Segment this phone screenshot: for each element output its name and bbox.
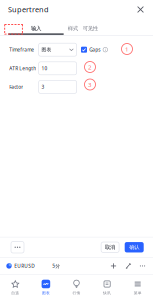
button[interactable]: Menu: [122, 275, 153, 300]
button[interactable]: Watchlist: [0, 275, 31, 300]
button[interactable]: 图表: [39, 43, 77, 56]
button[interactable]: News: [92, 275, 122, 300]
button[interactable]: 可见性: [83, 25, 98, 35]
button[interactable]: 取消: [101, 242, 119, 252]
button[interactable]: 3: [39, 80, 77, 93]
staticText: 2: [88, 63, 92, 71]
button[interactable]: 样式: [68, 25, 78, 35]
staticText: Factor: [9, 84, 23, 90]
staticText: EURUSD: [14, 263, 35, 269]
button[interactable]: Close: [134, 3, 147, 16]
staticText: Supertrend: [8, 4, 49, 14]
staticText: 图表: [42, 291, 50, 295]
button[interactable]: 输入: [8, 25, 64, 35]
staticText: 5分: [52, 263, 60, 269]
button[interactable]: 确认: [125, 242, 144, 252]
button[interactable]: Markets: [61, 275, 92, 300]
staticText: 输入: [31, 25, 41, 32]
button[interactable]: Drawing tools: [125, 262, 132, 269]
staticText: 10: [42, 65, 48, 71]
staticText: 确认: [129, 244, 139, 251]
button[interactable]: Chart: [31, 275, 61, 300]
button[interactable]: More options: [11, 241, 24, 253]
button[interactable]: Gaps: [81, 46, 108, 53]
staticText: Gaps: [89, 46, 100, 53]
staticText: 3: [42, 84, 45, 90]
staticText: 行情: [72, 291, 80, 295]
staticText: Timeframe: [9, 46, 34, 53]
staticText: 3: [88, 80, 92, 89]
staticText: 样式: [68, 25, 78, 32]
button[interactable]: Add indicator: [110, 262, 117, 269]
staticText: 快讯: [103, 291, 111, 295]
staticText: 1: [125, 45, 129, 53]
staticText: 菜单: [134, 291, 142, 295]
staticText: 自选: [11, 291, 19, 295]
staticText: 取消: [105, 244, 115, 251]
staticText: 可见性: [83, 25, 98, 32]
staticText: ATR Length: [9, 65, 36, 71]
staticText: 图表: [42, 47, 52, 53]
button[interactable]: More: [139, 262, 146, 269]
button[interactable]: 10: [39, 62, 77, 75]
